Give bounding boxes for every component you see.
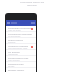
staticText: Customized reports are xyxy=(20,1,45,4)
button[interactable]: Campaign summary xyxy=(6,26,36,32)
staticText: Keyword plan xyxy=(8,62,24,65)
staticText: All accounts xyxy=(8,35,21,38)
button[interactable]: Keyword plan xyxy=(6,62,36,68)
staticText: reporting xyxy=(27,4,37,7)
staticText: Search terms xyxy=(8,38,24,41)
staticText: This month xyxy=(8,59,20,62)
staticText: Last 30 days xyxy=(8,29,21,32)
staticText: Audience insights xyxy=(8,44,29,47)
button[interactable]: Performance max xyxy=(6,56,36,62)
button[interactable]: Search terms xyxy=(6,38,36,44)
button[interactable]: Ad groups xyxy=(6,50,36,56)
button[interactable]: Audience insights xyxy=(6,44,36,50)
button[interactable]: Budget report xyxy=(6,68,36,72)
staticText: Campaign summary xyxy=(8,26,32,29)
staticText: Drafts xyxy=(8,65,15,68)
staticText: Ad groups xyxy=(8,50,20,53)
staticText: Weekly xyxy=(8,41,16,44)
staticText: Yesterday xyxy=(8,53,18,56)
staticText: Top segments now xyxy=(8,47,28,50)
button[interactable]: Conversion overview xyxy=(6,32,36,38)
staticText: Conversion overview xyxy=(8,32,32,35)
staticText: Budget report xyxy=(8,68,25,71)
staticText: Performance max xyxy=(8,56,29,59)
